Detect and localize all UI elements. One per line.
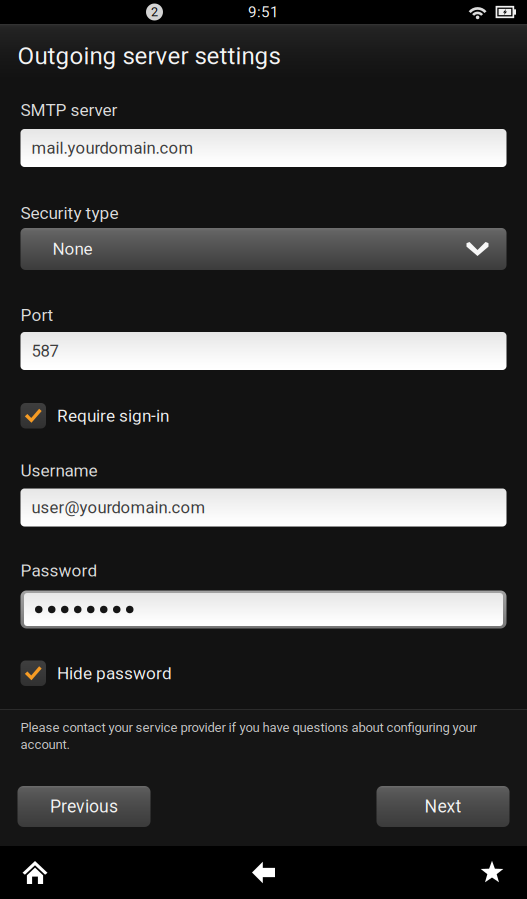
button[interactable]: Hide password bbox=[20, 660, 506, 686]
staticText: Next bbox=[424, 796, 461, 817]
staticText: Password bbox=[20, 560, 97, 581]
button[interactable] bbox=[20, 590, 506, 628]
staticText: Please contact your service provider if … bbox=[20, 720, 476, 735]
staticText: user@yourdomain.com bbox=[31, 498, 205, 517]
button[interactable]: mail.yourdomain.com bbox=[20, 129, 506, 167]
button[interactable]: user@yourdomain.com bbox=[20, 488, 506, 526]
staticText: Outgoing server settings bbox=[17, 42, 280, 70]
staticText: account. bbox=[20, 737, 69, 752]
button[interactable]: None bbox=[20, 228, 506, 270]
staticText: None bbox=[52, 239, 92, 259]
staticText: Username bbox=[20, 460, 97, 481]
staticText: mail.yourdomain.com bbox=[31, 138, 193, 158]
staticText: Require sign-in bbox=[57, 406, 169, 426]
staticText: Hide password bbox=[57, 663, 172, 683]
staticText: Previous bbox=[50, 796, 118, 817]
staticText: Security type bbox=[20, 203, 118, 223]
button[interactable]: 587 bbox=[20, 332, 506, 370]
button[interactable]: Previous bbox=[17, 786, 150, 827]
button[interactable]: Next bbox=[376, 786, 509, 827]
staticText: 2 bbox=[151, 5, 158, 19]
button[interactable]: Back bbox=[228, 846, 298, 899]
staticText: 587 bbox=[31, 341, 58, 361]
staticText: 9:51 bbox=[248, 3, 279, 21]
button[interactable]: Bookmarks bbox=[457, 846, 527, 899]
staticText: Port bbox=[20, 305, 53, 325]
staticText: SMTP server bbox=[20, 100, 117, 120]
button[interactable]: Require sign-in bbox=[20, 403, 506, 428]
button[interactable]: Home bbox=[0, 846, 70, 899]
